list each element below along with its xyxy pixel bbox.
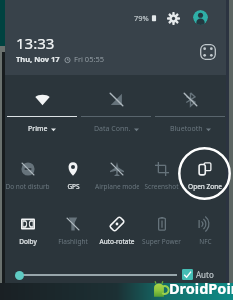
staticText: Auto — [196, 269, 214, 280]
button[interactable]: Data Conn. — [79, 82, 153, 137]
staticText: Prime — [28, 124, 48, 134]
staticText: Fri 05:55 — [74, 54, 105, 64]
staticText: Thu, Nov 17 — [16, 54, 60, 64]
button[interactable]: Bluetooth — [153, 82, 227, 137]
staticText: Flashlight — [58, 237, 88, 246]
button[interactable]: Auto-rotate — [95, 207, 139, 262]
button[interactable]: Auto — [182, 268, 214, 281]
button[interactable]: NFC — [183, 207, 227, 262]
staticText: Open Zone — [188, 182, 222, 191]
button[interactable] — [14, 268, 172, 282]
button[interactable]: Open Zone — [183, 152, 227, 207]
staticText: 13:33 — [16, 33, 55, 53]
staticText: Do not disturb — [5, 182, 50, 191]
staticText: Super Power — [142, 237, 181, 246]
staticText: NFC — [199, 237, 212, 246]
staticText: Airplane mode — [95, 182, 139, 191]
button[interactable]: Super Power — [139, 207, 183, 262]
button[interactable]: Settings — [166, 11, 180, 25]
staticText: Bluetooth — [170, 124, 203, 134]
button[interactable]: Prime — [5, 82, 79, 137]
staticText: Auto-rotate — [99, 237, 135, 246]
button[interactable]: GPS — [50, 152, 95, 207]
staticText: 79% — [134, 13, 149, 23]
button[interactable]: Dolby — [5, 207, 50, 262]
button[interactable]: Airplane mode — [95, 152, 139, 207]
button[interactable]: User account — [193, 10, 208, 25]
staticText: Screenshot — [144, 182, 179, 191]
button[interactable]: Screenshot — [139, 152, 183, 207]
staticText: GPS — [67, 182, 80, 191]
staticText: Data Conn. — [94, 124, 131, 134]
button[interactable]: Do not disturb — [5, 152, 50, 207]
button[interactable]: Edit tiles — [200, 44, 216, 60]
button[interactable]: Flashlight — [50, 207, 95, 262]
staticText: Dolby — [19, 237, 37, 246]
staticText: DroidPoin — [169, 278, 233, 295]
